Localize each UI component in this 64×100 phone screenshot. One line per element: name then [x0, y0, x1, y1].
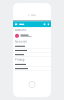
staticText: General	[15, 40, 27, 43]
staticText: Privacy	[15, 58, 24, 61]
staticText: Account	[15, 28, 26, 32]
